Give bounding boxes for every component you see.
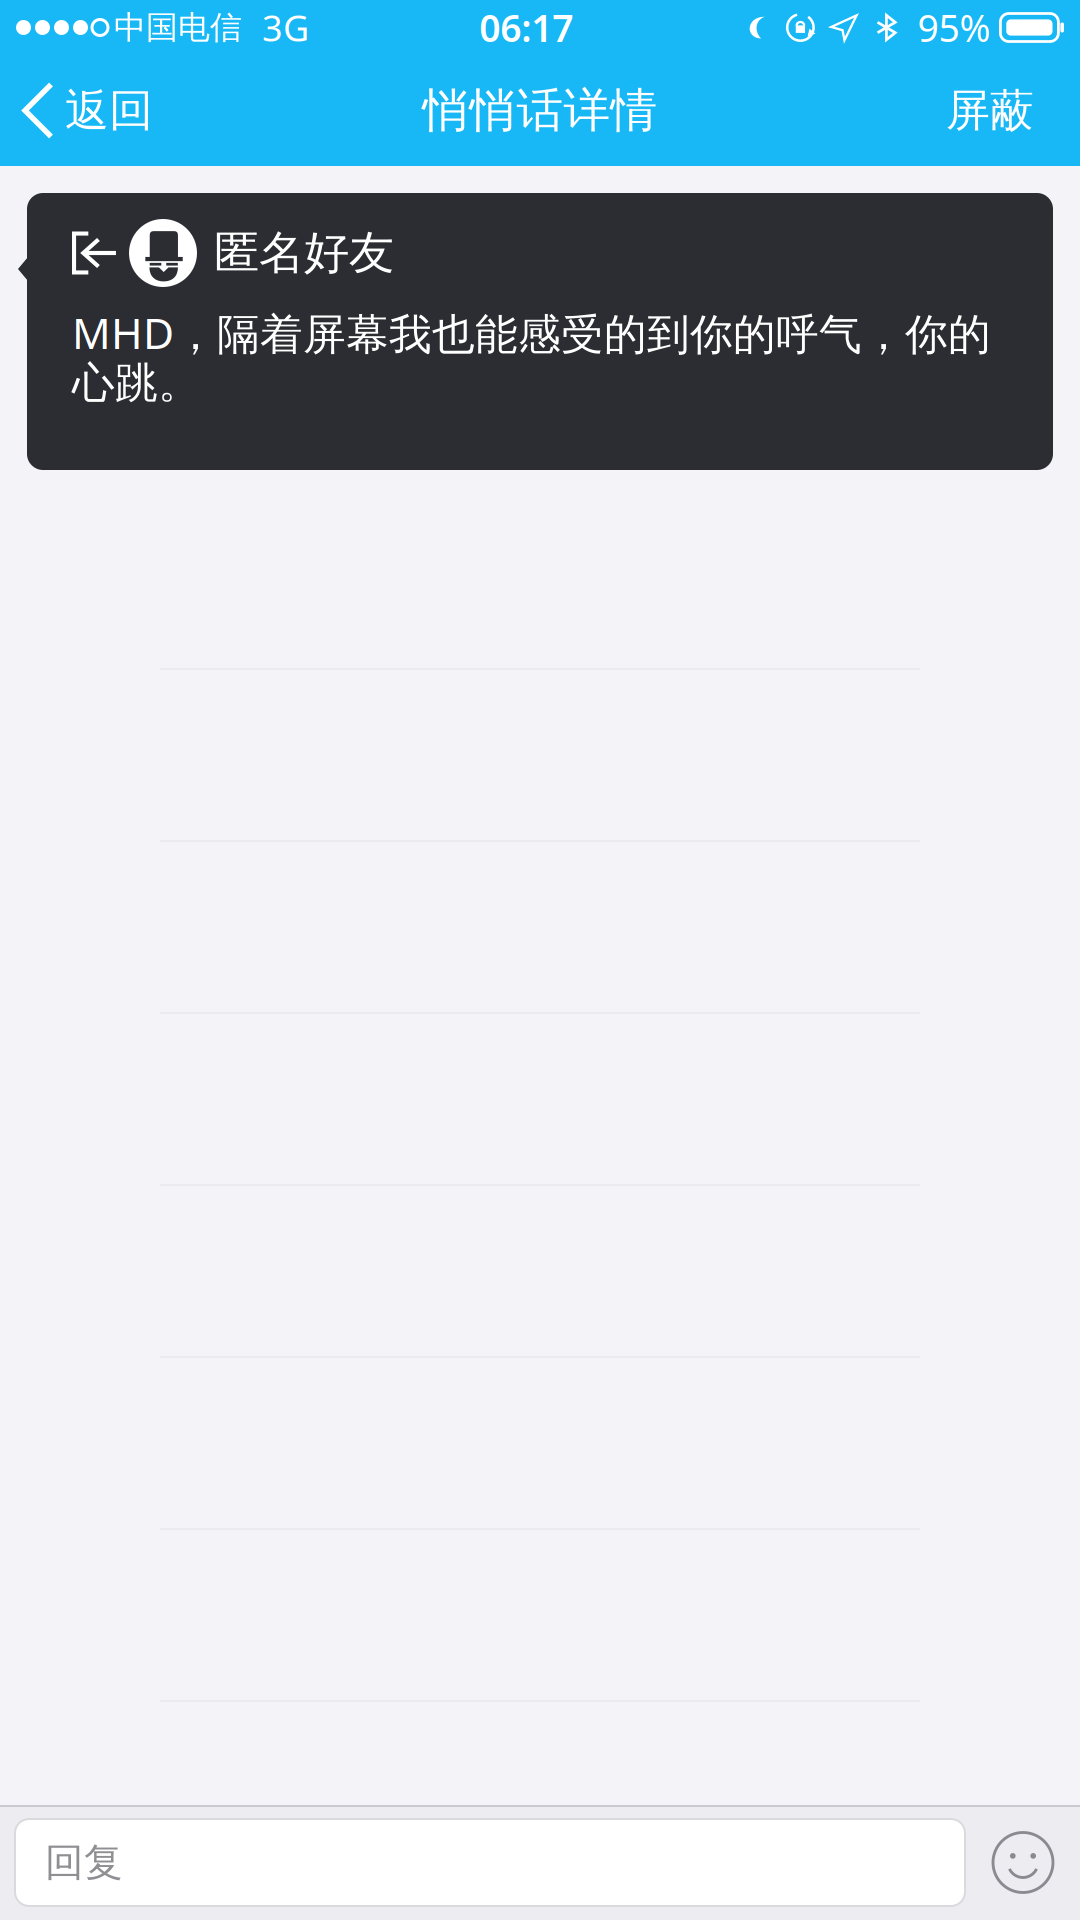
staticText: 3G <box>262 4 309 51</box>
staticText: 匿名好友 <box>214 225 394 281</box>
button[interactable]: Emoji <box>976 1812 1070 1912</box>
staticText: MHD，隔着屏幕我也能感受的到你的呼气，你的心跳。 <box>72 304 991 409</box>
button[interactable]: 返回 <box>0 67 169 153</box>
staticText: 95% <box>917 3 990 52</box>
button[interactable]: 回复 <box>15 1819 965 1906</box>
staticText: 06:17 <box>479 3 573 52</box>
staticText: 中国电信 <box>114 8 242 47</box>
staticText: 返回 <box>65 83 153 137</box>
button[interactable]: 屏蔽 <box>922 69 1058 151</box>
staticText: 回复 <box>45 1839 123 1886</box>
staticText: 悄悄话详情 <box>422 82 657 139</box>
staticText: 屏蔽 <box>946 83 1034 137</box>
